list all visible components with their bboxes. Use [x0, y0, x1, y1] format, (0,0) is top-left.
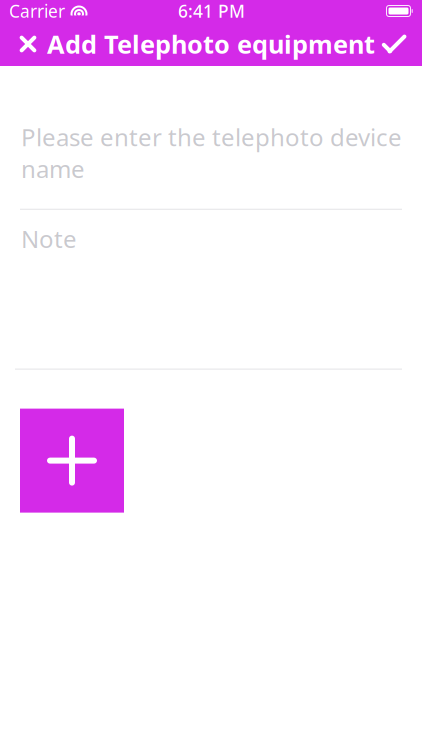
button[interactable]: Close — [0, 22, 56, 66]
button[interactable]: Save — [366, 22, 422, 66]
staticText: 6:41 PM — [178, 0, 245, 22]
staticText: Add Telephoto equipment — [47, 27, 375, 61]
button[interactable]: Add photo — [20, 409, 124, 513]
staticText: Carrier — [9, 0, 65, 22]
staticText: Please enter the telephoto device name — [21, 121, 402, 185]
staticText: Note — [21, 223, 77, 255]
